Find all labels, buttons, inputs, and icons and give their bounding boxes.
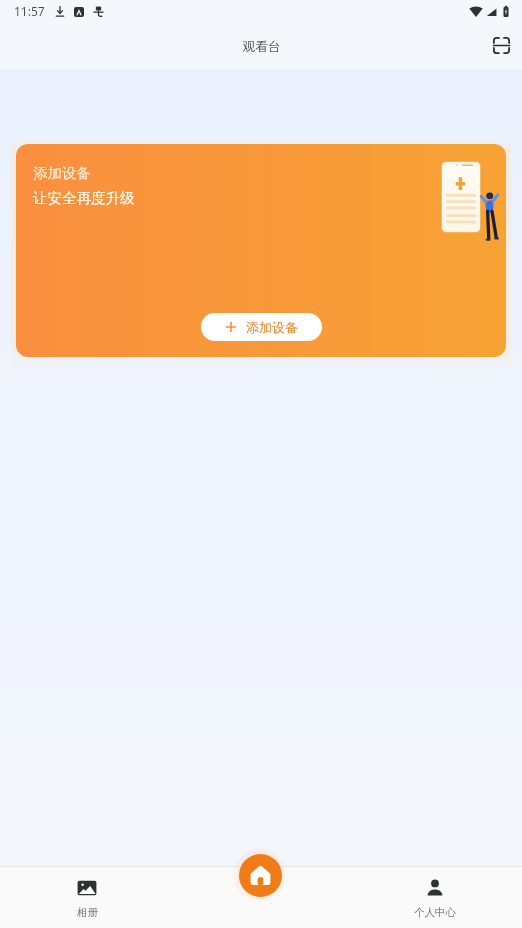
staticText: 添加设备 — [246, 319, 298, 335]
staticText: 11:57 — [14, 3, 45, 19]
button[interactable]: 添加设备 — [16, 144, 506, 357]
staticText: 相册 — [77, 906, 98, 919]
staticText: 个人中心 — [414, 906, 456, 919]
button[interactable]: 添加设备 — [201, 313, 322, 341]
button[interactable]: 相册 — [0, 866, 174, 928]
staticText: 观看台 — [242, 39, 281, 55]
staticText: 添加设备 — [33, 164, 91, 182]
button[interactable]: 个人中心 — [348, 866, 522, 928]
staticText: 让安全再度升级 — [33, 189, 135, 207]
button[interactable]: Scan — [481, 25, 521, 65]
button[interactable]: Home — [239, 854, 282, 897]
